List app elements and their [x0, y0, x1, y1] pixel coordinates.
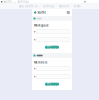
staticText: Workspace — [34, 24, 49, 27]
staticText: Scuttle — [36, 11, 46, 14]
staticText: app.scuttle.io · settings · account · te… — [19, 4, 80, 8]
staticText: Members — [34, 61, 47, 64]
staticText: Scuttle — Settings — [3, 0, 28, 3]
button[interactable]: Save changes — [45, 83, 59, 86]
staticText: Save changes — [46, 44, 57, 51]
button[interactable]: Save changes — [45, 46, 59, 49]
staticText: Save changes — [46, 81, 57, 88]
button[interactable]: Account — [67, 11, 70, 14]
